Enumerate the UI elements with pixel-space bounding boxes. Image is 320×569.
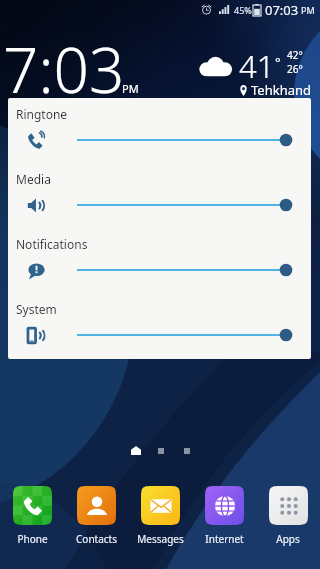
staticText: Contacts [76, 532, 117, 546]
button[interactable]: Phone [0, 486, 64, 546]
staticText: Media [16, 171, 51, 187]
staticText: 7:03 [3, 27, 125, 111]
button[interactable]: Contacts [64, 486, 128, 546]
staticText: Notifications [16, 236, 88, 252]
staticText: 41 [239, 45, 275, 87]
staticText: 42° [287, 48, 303, 62]
staticText: 26° [287, 62, 303, 76]
staticText: 07:03 [265, 1, 299, 19]
button[interactable]: Messages [128, 486, 192, 546]
staticText: Ringtone [16, 106, 68, 122]
staticText: PM [301, 4, 315, 16]
staticText: ° [275, 53, 281, 71]
button[interactable]: System volume [77, 325, 311, 345]
staticText: Tehkhand [251, 81, 311, 99]
staticText: Internet [205, 532, 244, 546]
button[interactable]: Home page [131, 446, 141, 455]
staticText: Apps [276, 532, 300, 546]
button[interactable]: Ringtone volume [77, 130, 311, 150]
staticText: PM [122, 81, 139, 96]
button[interactable]: Internet [192, 486, 256, 546]
button[interactable]: Notifications volume [77, 260, 311, 280]
staticText: Messages [137, 532, 184, 546]
button[interactable]: Media volume [77, 195, 311, 215]
staticText: 45% [234, 4, 252, 16]
staticText: Phone [17, 532, 48, 546]
staticText: System [16, 301, 57, 317]
button[interactable]: Apps [256, 486, 320, 546]
